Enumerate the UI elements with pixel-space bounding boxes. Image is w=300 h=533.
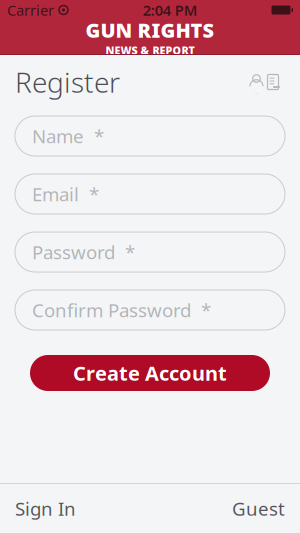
button[interactable]: Guest	[217, 484, 300, 533]
staticText: GUN RIGHTS	[85, 17, 214, 43]
button[interactable]: Register account	[245, 67, 285, 97]
staticText: Carrier	[7, 0, 54, 20]
staticText: Register	[15, 63, 120, 101]
staticText: NEWS & REPORT	[105, 43, 194, 57]
staticText: Email *	[32, 182, 99, 206]
staticText: Confirm Password *	[32, 298, 211, 322]
staticText: Name *	[32, 124, 104, 148]
staticText: Create Account	[73, 360, 227, 386]
button[interactable]: Create Account	[30, 355, 270, 391]
button[interactable]: Sign In	[0, 484, 91, 533]
staticText: Sign In	[15, 496, 76, 521]
staticText: Guest	[232, 496, 285, 521]
staticText: Password *	[32, 240, 135, 264]
staticText: 2:04 PM	[143, 0, 198, 20]
